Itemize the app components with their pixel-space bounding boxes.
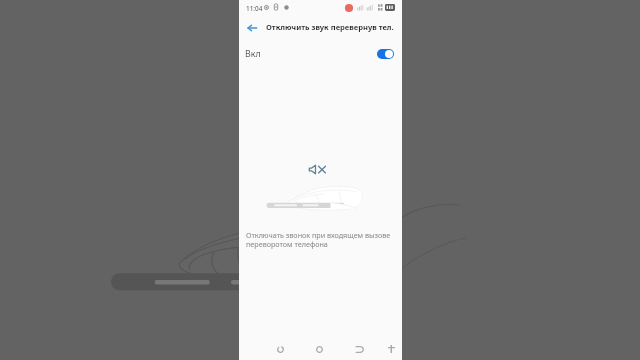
button[interactable]: Вкл	[239, 44, 402, 63]
button[interactable]: Назад	[243, 19, 261, 37]
staticText: Вкл	[245, 48, 261, 60]
button[interactable]: Главная	[311, 341, 327, 357]
staticText: Отключать звонок при входящем вызове пер…	[246, 230, 397, 249]
button[interactable]: Назад	[352, 341, 368, 357]
staticText: Отключить звук перевернув тел…	[266, 22, 394, 32]
button[interactable]: Недавние	[272, 341, 288, 357]
button[interactable]: Скрыть клавиатуру	[383, 341, 399, 357]
staticText: 11:04	[246, 4, 263, 13]
